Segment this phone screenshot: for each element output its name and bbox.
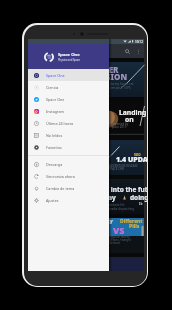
button[interactable]: Beauty (28, 218, 144, 253)
staticText: on (125, 115, 134, 124)
button[interactable]: More options (133, 46, 143, 56)
staticText: SPACE ONE (109, 167, 125, 171)
staticText: Cambia de tema (46, 186, 75, 191)
button[interactable]: Última 24 horas (28, 117, 109, 129)
button[interactable]: Space One (28, 93, 109, 105)
staticText: No leídos (46, 133, 63, 138)
staticText: Space One (46, 73, 65, 78)
staticText: Sincroniza ahora (46, 174, 75, 179)
staticText: physical fitness (109, 235, 130, 239)
button[interactable]: Favoritos (28, 141, 109, 153)
staticText: the space 2019 (106, 125, 127, 129)
staticText: media dispatching (109, 207, 135, 211)
staticText: Ciencia (46, 85, 59, 90)
button[interactable]: No leídos (28, 129, 109, 141)
staticText: Favoritos (46, 145, 62, 150)
button[interactable]: Landing (28, 101, 144, 136)
staticText: Ajustes (46, 198, 59, 203)
staticText: Descarga (46, 162, 63, 167)
button[interactable]: travel into the future (28, 179, 144, 214)
staticText: during fusion era (110, 82, 134, 86)
button[interactable] (28, 257, 144, 271)
staticText: Beauty (95, 218, 113, 225)
button[interactable]: Instagram (28, 105, 109, 117)
staticText: of facts / weight (109, 238, 131, 242)
staticText: General (109, 241, 120, 245)
button[interactable]: Space One (28, 69, 109, 81)
button[interactable]: Descarga (28, 158, 109, 170)
staticText: travel into the future (90, 185, 147, 194)
staticText: VS (113, 224, 125, 236)
staticText: website file (109, 203, 125, 207)
button[interactable]: SUPER (28, 62, 144, 97)
staticText: Landing (119, 108, 147, 117)
staticText: Space One (58, 51, 80, 57)
staticText: Instagram (46, 109, 64, 114)
staticText: It (139, 201, 143, 207)
staticText: 10:12 (135, 40, 143, 44)
staticText: today (97, 193, 116, 202)
button[interactable]: Ajustes (28, 194, 109, 206)
staticText: version 1.1 SPE (110, 86, 131, 90)
button[interactable]: Cambia de tema (28, 182, 109, 194)
button[interactable]: Ciencia (28, 81, 109, 93)
staticText: 1.4 UPDATE (116, 155, 147, 165)
button[interactable]: TASO (28, 140, 144, 175)
button[interactable]: Search (122, 46, 132, 56)
staticText: Physics and Space (58, 58, 81, 62)
staticText: doing (130, 193, 147, 202)
button[interactable]: Sincroniza ahora (28, 170, 109, 182)
staticText: Different (120, 218, 143, 225)
staticText: Pills (129, 222, 140, 229)
staticText: Última 24 horas (46, 121, 74, 126)
staticText: ADVENTURE RELEASE (109, 164, 138, 168)
staticText: SUPER (93, 64, 119, 75)
staticText: TASO (134, 153, 141, 157)
staticText: accompanied by (106, 122, 129, 126)
staticText: Space One (46, 97, 65, 102)
staticText: MISSION (90, 71, 128, 82)
